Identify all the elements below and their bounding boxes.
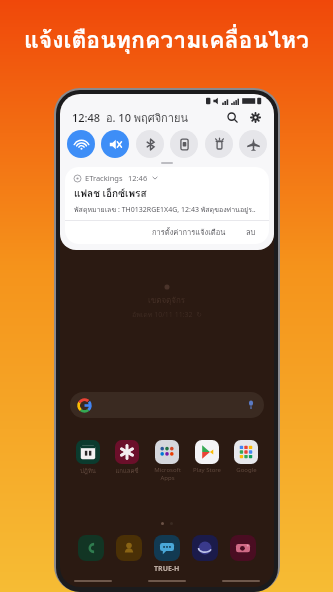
- button[interactable]: ETrackings: [65, 167, 269, 244]
- button[interactable]: Flashlight: [205, 130, 233, 158]
- button[interactable]: Airplane mode: [239, 130, 267, 158]
- staticText: พัสดุหมายเลข : TH0132RGE1X4G, 12:43 พัสด…: [74, 204, 256, 215]
- button[interactable]: Messages: [154, 535, 180, 561]
- button[interactable]: Wi-Fi: [67, 130, 95, 158]
- button[interactable]: Internet: [192, 535, 218, 561]
- staticText: 12:46: [128, 173, 148, 183]
- button[interactable]: การตั้งค่าการแจ้งเตือน: [149, 225, 229, 239]
- button[interactable]: Mute: [101, 130, 129, 158]
- staticText: แจ้งเตือนทุกความเคลื่อนไหว: [10, 22, 323, 59]
- button[interactable]: Camera: [230, 535, 256, 561]
- button[interactable]: Settings: [246, 108, 264, 126]
- button[interactable]: Google: [228, 440, 264, 474]
- staticText: การตั้งค่าการแจ้งเตือน: [152, 226, 226, 238]
- button[interactable]: Phone: [78, 535, 104, 561]
- button[interactable]: แกแลคซี่: [109, 440, 145, 476]
- button[interactable]: Contacts: [116, 535, 142, 561]
- staticText: แฟลช เอ็กซ์เพรส: [74, 186, 147, 202]
- button[interactable]: Mobile data: [170, 130, 198, 158]
- button[interactable]: [148, 580, 186, 582]
- button[interactable]: [74, 580, 112, 582]
- button[interactable]: [70, 392, 264, 418]
- button[interactable]: Bluetooth: [136, 130, 164, 158]
- staticText: TRUE-H: [154, 564, 180, 574]
- button[interactable]: ปฎิทิน: [70, 440, 106, 476]
- button[interactable]: [222, 580, 260, 582]
- staticText: ลบ: [246, 226, 256, 238]
- button[interactable]: Search: [223, 108, 241, 126]
- button[interactable]: Microsoft Apps: [149, 440, 185, 482]
- staticText: เขตจตุจักร: [148, 294, 186, 307]
- staticText: 12:48 อ. 10 พฤศจิกายน: [72, 109, 188, 126]
- staticText: แกแลคซี่: [115, 466, 139, 476]
- staticText: Microsoft Apps: [154, 466, 181, 482]
- staticText: ETrackings: [85, 173, 123, 183]
- staticText: Google: [236, 466, 257, 474]
- staticText: อัพเดท 10/11 11:32 ↻: [132, 309, 203, 320]
- button[interactable]: Play Store: [189, 440, 225, 474]
- staticText: ปฎิทิน: [80, 466, 96, 476]
- staticText: Play Store: [193, 466, 221, 474]
- button[interactable]: ลบ: [243, 225, 259, 239]
